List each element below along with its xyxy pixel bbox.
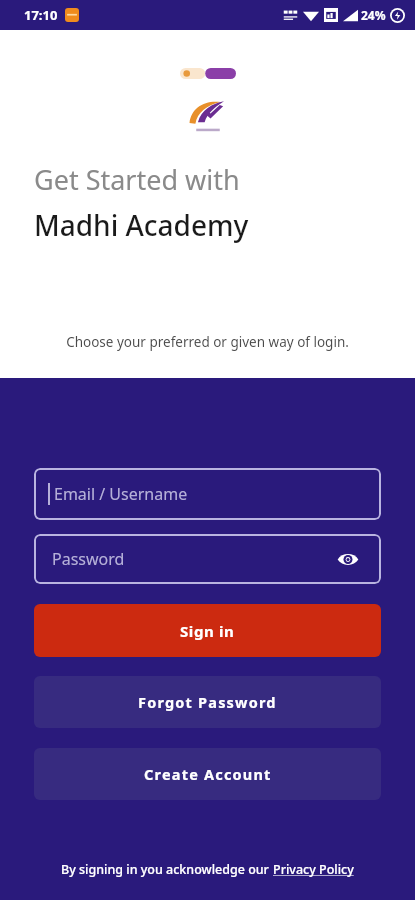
staticText: Sign in (180, 621, 235, 641)
button[interactable]: Email / Username (34, 468, 381, 520)
button[interactable]: Privacy Policy (273, 861, 354, 878)
staticText: Madhi Academy (34, 206, 249, 244)
button[interactable]: Show password (333, 544, 363, 574)
staticText: Create Account (144, 764, 272, 784)
staticText: Privacy Policy (273, 861, 354, 878)
staticText: Password (52, 548, 125, 570)
button[interactable]: Sign in (34, 604, 381, 657)
staticText: 24% (361, 7, 386, 23)
button[interactable]: Password (34, 534, 381, 584)
staticText: Forgot Password (138, 692, 277, 712)
staticText: Choose your preferred or given way of lo… (0, 333, 415, 351)
staticText: Email / Username (54, 483, 188, 505)
button[interactable]: Create Account (34, 748, 381, 800)
staticText: Get Started with (34, 161, 240, 198)
button[interactable]: Forgot Password (34, 676, 381, 728)
staticText: By signing in you acknowledge our (61, 861, 273, 878)
staticText: 17:10 (24, 6, 58, 24)
